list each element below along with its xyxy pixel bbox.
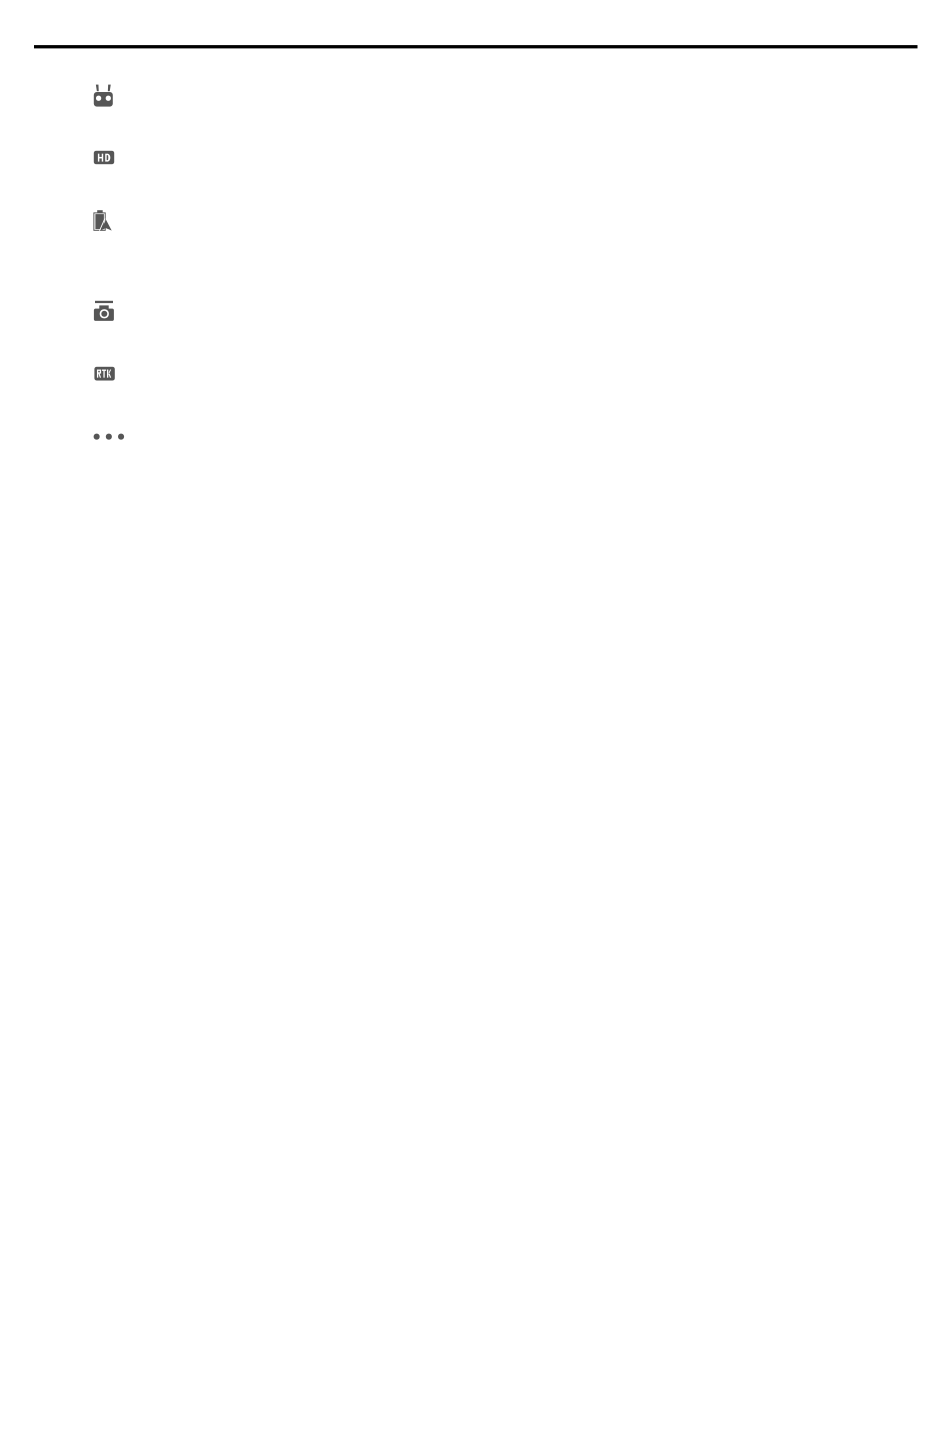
button[interactable]: Remote controller (94, 85, 113, 107)
button[interactable]: RTK positioning (94, 367, 115, 380)
button[interactable]: Flight battery (93, 210, 112, 231)
button[interactable]: HD video link (94, 151, 114, 164)
button[interactable]: Camera (94, 301, 114, 321)
button[interactable]: More settings (94, 434, 124, 440)
